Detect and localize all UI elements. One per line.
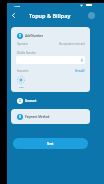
button[interactable]: View All <box>75 69 85 73</box>
staticText: Next <box>47 142 54 146</box>
button[interactable]: Next <box>13 138 88 149</box>
staticText: No operator selected <box>59 42 85 46</box>
button[interactable] <box>16 56 85 64</box>
button[interactable]: Pick contact <box>78 56 86 64</box>
staticText: Topup & Billpay <box>29 12 71 19</box>
staticText: Favourite <box>17 69 29 73</box>
staticText: Add <box>19 85 24 88</box>
staticText: 2 <box>19 99 21 103</box>
button[interactable]: Help <box>87 11 96 20</box>
button[interactable]: 3 <box>11 109 90 124</box>
button[interactable]: 2 <box>11 95 90 106</box>
staticText: 1 <box>19 34 21 38</box>
staticText: 3 <box>19 115 21 119</box>
button[interactable]: 1 <box>17 33 43 39</box>
staticText: Payment Method <box>25 115 50 119</box>
staticText: Amount <box>25 99 37 103</box>
button[interactable]: Add <box>17 76 25 88</box>
staticText: Add Number <box>25 34 43 38</box>
staticText: Mobile Number <box>17 51 37 55</box>
staticText: 12:08 <box>14 4 21 7</box>
button[interactable]: Back <box>8 10 19 21</box>
staticText: Operator <box>17 42 29 46</box>
